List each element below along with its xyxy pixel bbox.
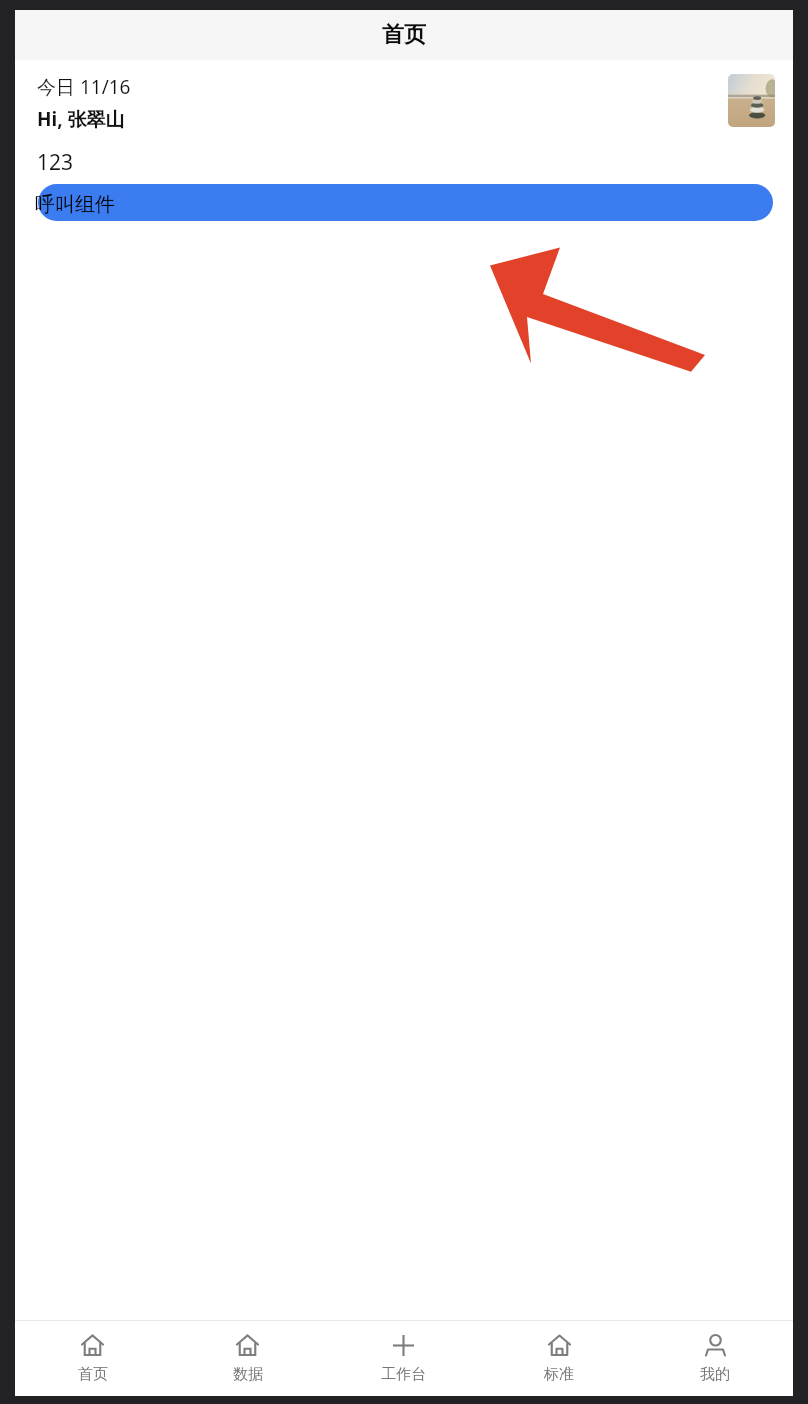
button[interactable]	[38, 184, 773, 221]
staticText: 标准	[544, 1365, 574, 1384]
button[interactable]: Profile photo	[728, 74, 775, 127]
button[interactable]: 我的	[637, 1321, 793, 1396]
staticText: 数据	[233, 1365, 263, 1384]
staticText: 我的	[700, 1365, 730, 1384]
staticText: 今日 11/16	[37, 74, 131, 100]
staticText: 首页	[382, 21, 426, 49]
staticText: 工作台	[381, 1365, 426, 1384]
staticText: Hi, 张翠山	[37, 106, 125, 132]
staticText: 首页	[78, 1365, 108, 1384]
staticText: 123	[37, 148, 74, 177]
staticText: 呼叫组件	[35, 192, 115, 217]
button[interactable]: 标准	[481, 1321, 637, 1396]
button[interactable]: 首页	[15, 1321, 170, 1396]
button[interactable]: 数据	[170, 1321, 325, 1396]
button[interactable]: 工作台	[325, 1321, 481, 1396]
